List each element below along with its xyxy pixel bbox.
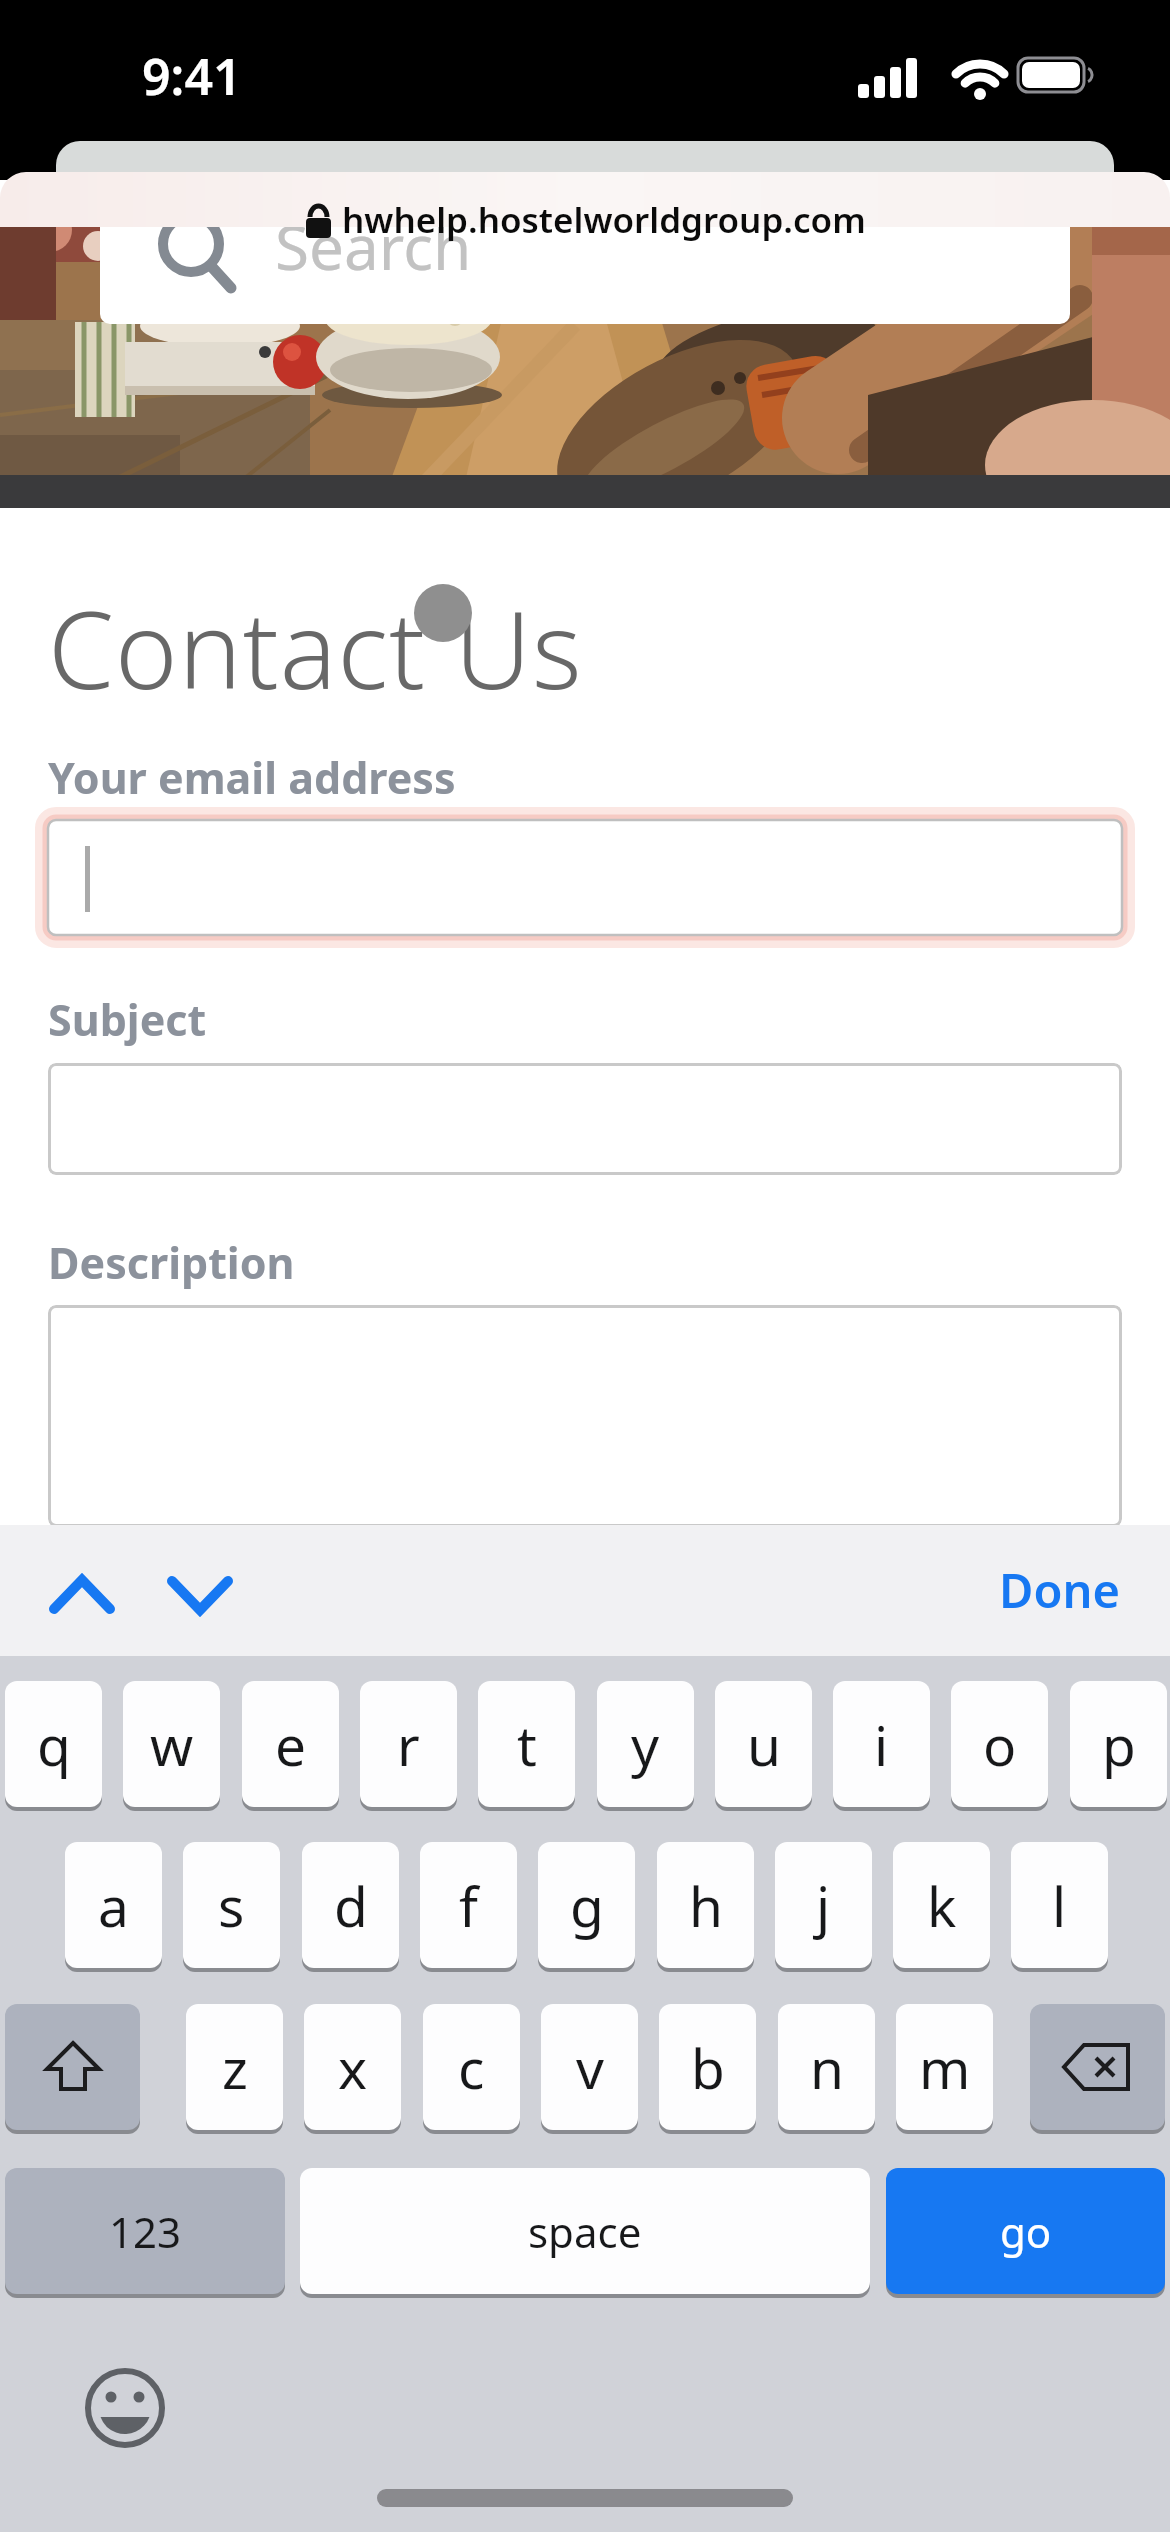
button[interactable]: v	[541, 2004, 638, 2130]
button[interactable]: w	[123, 1681, 220, 1807]
button[interactable]: n	[778, 2004, 875, 2130]
button[interactable]	[152, 1560, 248, 1620]
button[interactable]: h	[657, 1842, 754, 1968]
button[interactable]: Search	[100, 202, 1070, 324]
button[interactable]: o	[951, 1681, 1048, 1807]
button[interactable]: k	[893, 1842, 990, 1968]
staticText: y	[631, 1707, 660, 1782]
staticText: w	[150, 1707, 194, 1782]
staticText: k	[927, 1868, 957, 1943]
button[interactable]: u	[715, 1681, 812, 1807]
button[interactable]: y	[597, 1681, 694, 1807]
button[interactable]	[85, 2368, 165, 2448]
button[interactable]: g	[538, 1842, 635, 1968]
staticText: a	[98, 1868, 129, 1943]
staticText: space	[528, 2203, 642, 2260]
staticText: o	[983, 1707, 1017, 1782]
button[interactable]	[48, 1063, 1122, 1175]
staticText: m	[919, 2030, 971, 2105]
button[interactable]: p	[1070, 1681, 1167, 1807]
staticText: x	[338, 2030, 368, 2105]
staticText: 123	[109, 2203, 182, 2260]
button[interactable]: f	[420, 1842, 517, 1968]
button[interactable]: a	[65, 1842, 162, 1968]
button[interactable]	[5, 2004, 140, 2130]
button[interactable]: s	[183, 1842, 280, 1968]
button[interactable]: x	[304, 2004, 401, 2130]
button[interactable]: 123	[5, 2168, 285, 2294]
button[interactable]: e	[242, 1681, 339, 1807]
staticText: n	[810, 2030, 844, 2105]
staticText: Contact Us	[48, 576, 583, 720]
staticText: s	[218, 1868, 245, 1943]
staticText: r	[397, 1707, 420, 1782]
button[interactable]	[34, 1560, 130, 1620]
staticText: g	[570, 1868, 604, 1943]
button[interactable]: b	[659, 2004, 756, 2130]
button[interactable]: c	[423, 2004, 520, 2130]
button[interactable]: space	[300, 2168, 870, 2294]
button[interactable]	[48, 1305, 1122, 1527]
button[interactable]: go	[886, 2168, 1165, 2294]
staticText: hwhelp.hostelworldgroup.com	[342, 196, 866, 244]
staticText: j	[816, 1868, 831, 1943]
staticText: f	[459, 1868, 478, 1943]
staticText: Done	[999, 1558, 1120, 1622]
staticText: b	[691, 2030, 725, 2105]
button[interactable]: z	[186, 2004, 283, 2130]
staticText: Description	[48, 1233, 295, 1292]
staticText: t	[517, 1707, 537, 1782]
button[interactable]: Done	[990, 1545, 1140, 1635]
button[interactable]: d	[302, 1842, 399, 1968]
button[interactable]: t	[478, 1681, 575, 1807]
staticText: c	[458, 2030, 485, 2105]
button[interactable]: j	[775, 1842, 872, 1968]
button[interactable]: i	[833, 1681, 930, 1807]
staticText: Subject	[48, 990, 207, 1049]
staticText: 9:41	[142, 42, 242, 110]
staticText: Your email address	[48, 748, 456, 807]
button[interactable]	[0, 172, 1170, 227]
staticText: v	[576, 2030, 604, 2105]
staticText: p	[1102, 1707, 1136, 1782]
button[interactable]: l	[1011, 1842, 1108, 1968]
staticText: d	[334, 1868, 368, 1943]
button[interactable]	[40, 812, 1130, 943]
staticText: h	[689, 1868, 723, 1943]
staticText: u	[747, 1707, 781, 1782]
staticText: l	[1052, 1868, 1067, 1943]
staticText: e	[275, 1707, 307, 1782]
button[interactable]: q	[5, 1681, 102, 1807]
button[interactable]: r	[360, 1681, 457, 1807]
staticText: q	[37, 1707, 71, 1782]
staticText: Search	[275, 204, 472, 288]
staticText: i	[874, 1707, 889, 1782]
staticText: z	[222, 2030, 248, 2105]
button[interactable]: m	[896, 2004, 993, 2130]
staticText: go	[1000, 2203, 1052, 2260]
button[interactable]	[1030, 2004, 1165, 2130]
